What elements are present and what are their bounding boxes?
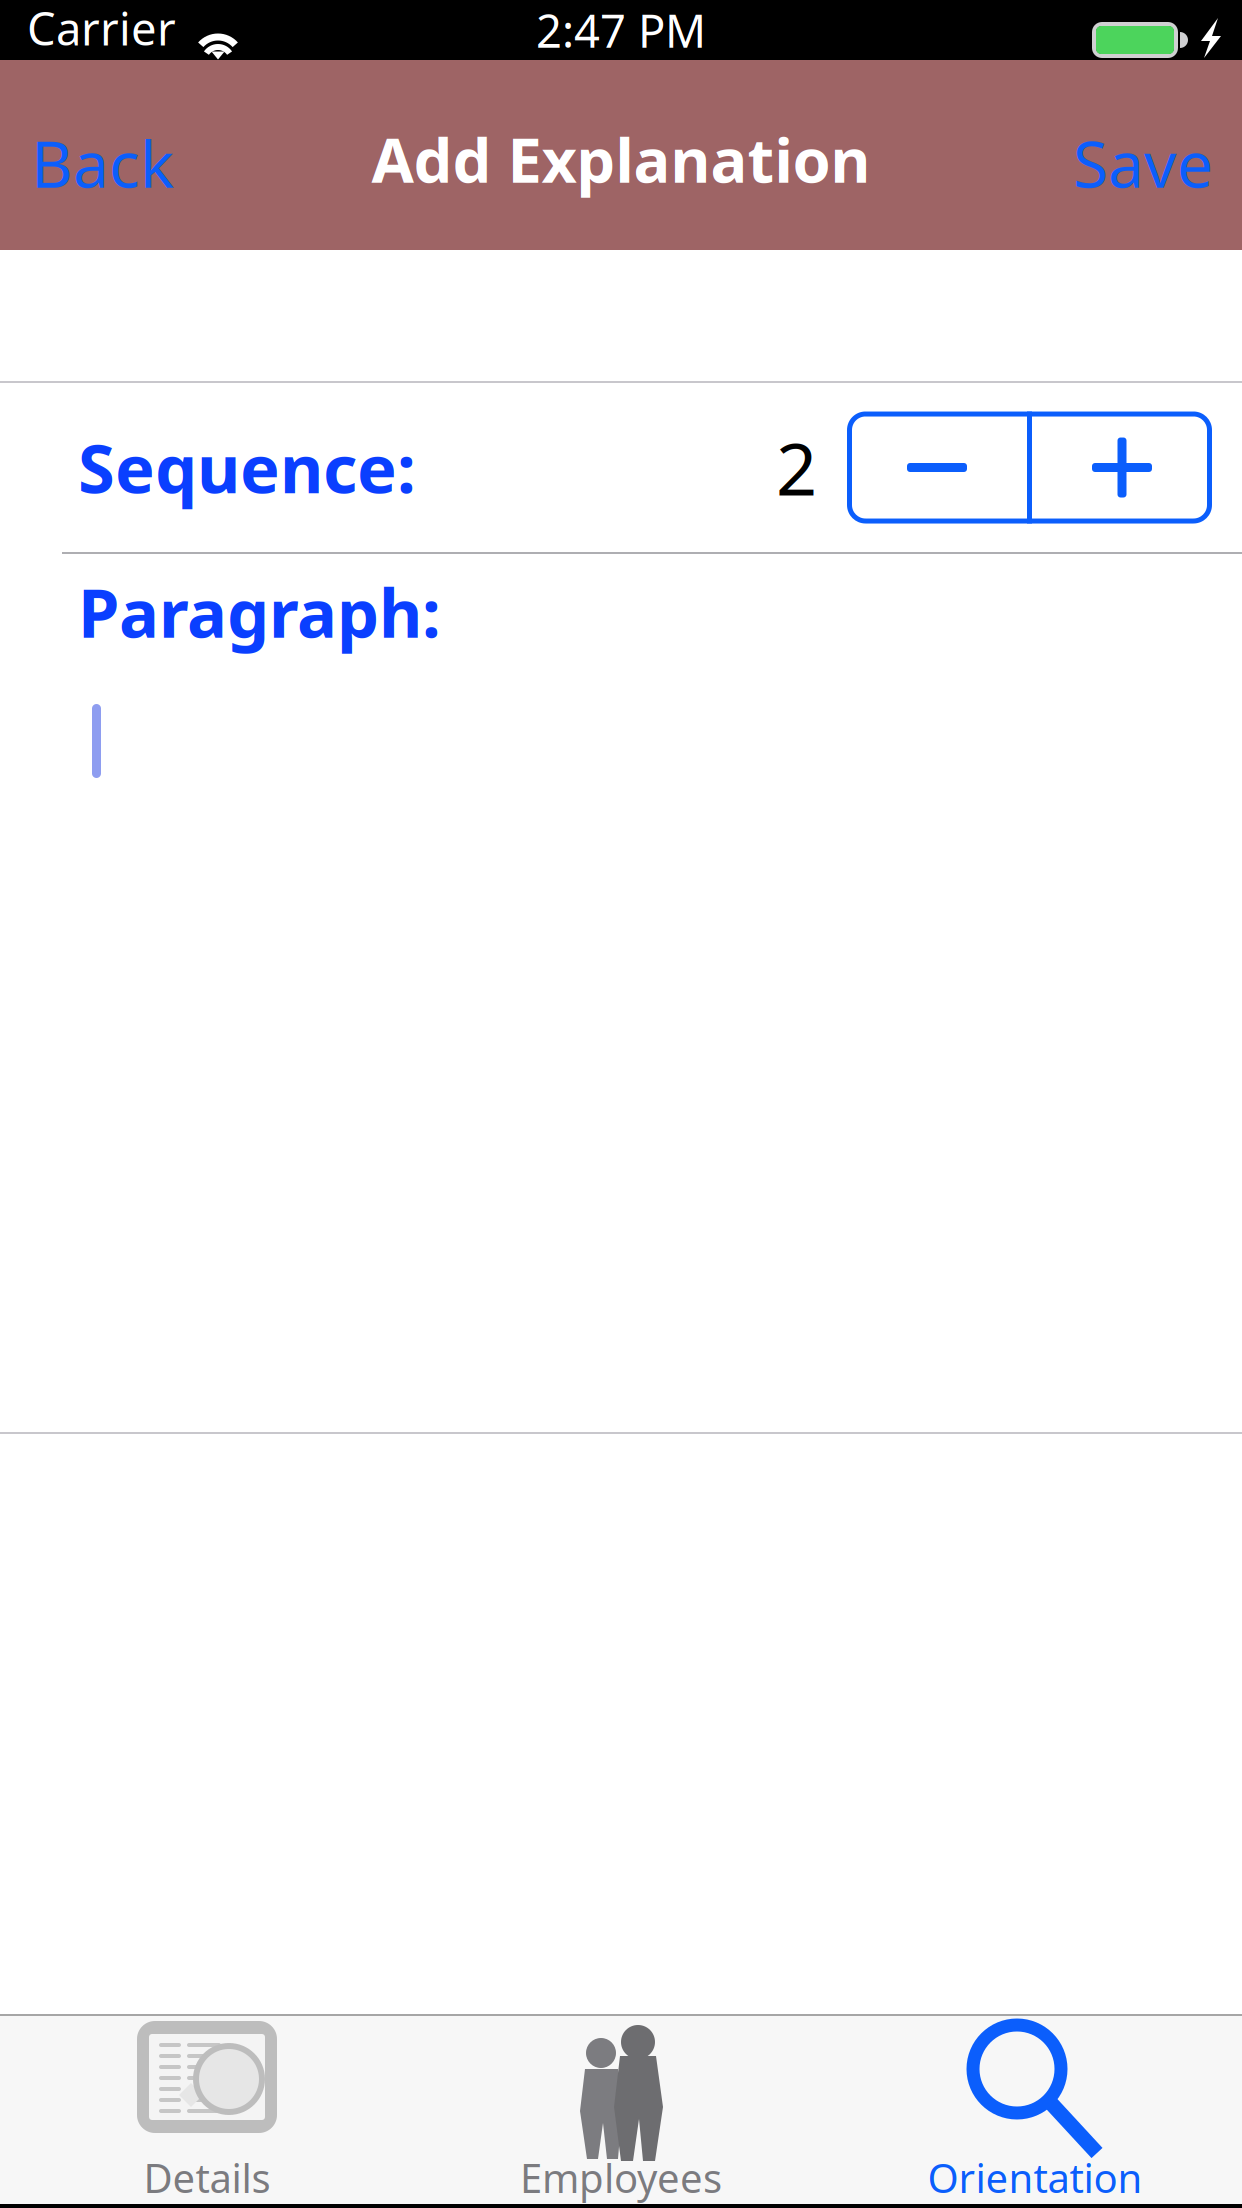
- staticText: Orientation: [927, 2151, 1142, 2204]
- button[interactable]: Decrease sequence: [847, 411, 1027, 523]
- staticText: Save: [1073, 120, 1213, 205]
- button[interactable]: Employees: [414, 2016, 828, 2204]
- staticText: 2: [776, 420, 817, 515]
- staticText: 2:47 PM: [536, 0, 706, 49]
- staticText: Back: [31, 120, 174, 205]
- button[interactable]: Back: [0, 60, 198, 250]
- staticText: Add Explanation: [371, 118, 870, 200]
- button[interactable]: Increase sequence: [1032, 411, 1212, 523]
- staticText: Paragraph:: [78, 568, 441, 656]
- button[interactable]: Details: [0, 2016, 414, 2204]
- staticText: Carrier: [27, 0, 176, 58]
- button[interactable]: Orientation: [828, 2016, 1242, 2204]
- staticText: Employees: [520, 2151, 722, 2204]
- staticText: Sequence:: [78, 423, 416, 512]
- staticText: Details: [143, 2151, 270, 2204]
- button[interactable]: Save: [1049, 60, 1242, 250]
